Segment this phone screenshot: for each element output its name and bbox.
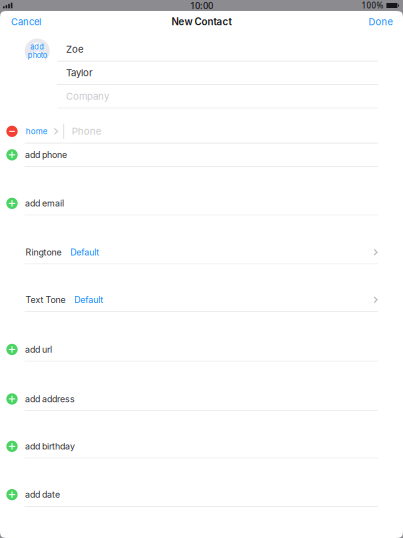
button[interactable]: add birthday	[0, 435, 403, 458]
staticText: Done	[369, 16, 393, 27]
button[interactable]: Text Tone	[0, 288, 403, 312]
button[interactable]: add address	[0, 388, 403, 411]
staticText: add birthday	[25, 441, 75, 452]
staticText: Taylor	[66, 67, 93, 79]
staticText: add phone	[25, 149, 67, 160]
staticText: add url	[25, 344, 52, 355]
button[interactable]: Add photo	[25, 38, 50, 63]
button[interactable]: Cancel	[5, 12, 47, 31]
staticText: add email	[25, 198, 64, 209]
button[interactable]: Ringtone	[0, 241, 403, 264]
staticText: 10:00	[190, 0, 213, 12]
button[interactable]: add email	[0, 192, 403, 215]
staticText: Zoe	[66, 43, 84, 55]
staticText: Company	[66, 90, 109, 102]
staticText: Phone	[72, 125, 102, 137]
button[interactable]: add date	[0, 483, 403, 507]
staticText: Text Tone	[26, 294, 66, 305]
staticText: 100%	[361, 0, 383, 11]
button[interactable]: add phone	[0, 143, 403, 167]
staticText: add	[30, 42, 44, 51]
button[interactable]: home	[18, 126, 58, 136]
button[interactable]: Done	[363, 12, 398, 31]
staticText: Cancel	[11, 16, 41, 27]
staticText: home	[26, 126, 48, 136]
staticText: Default	[70, 247, 99, 257]
staticText: add address	[25, 394, 75, 404]
staticText: Default	[74, 294, 103, 305]
staticText: New Contact	[171, 16, 231, 28]
staticText: photo	[28, 51, 47, 60]
button[interactable]: add url	[0, 338, 403, 362]
staticText: Ringtone	[26, 247, 62, 257]
staticText: add date	[25, 489, 60, 500]
